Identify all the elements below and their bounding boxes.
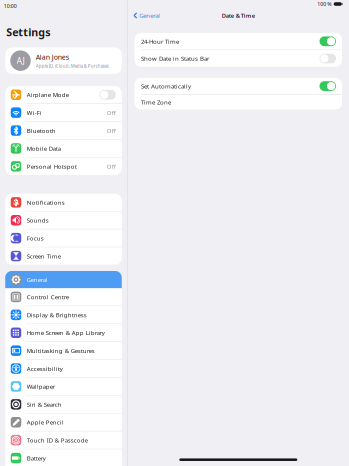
button[interactable]: Touch ID & Passcode	[5, 431, 122, 449]
staticText: Apple Pencil	[27, 418, 64, 426]
button[interactable]: Multitasking & Gestures	[5, 342, 122, 360]
staticText: General	[139, 11, 160, 20]
staticText: Apple ID, iCloud, Media & Purchases	[36, 63, 109, 69]
button[interactable]: Time Zone	[135, 95, 342, 109]
button[interactable]: Set Automatically	[135, 78, 342, 95]
staticText: 100 %	[317, 0, 331, 8]
staticText: Wi-Fi	[27, 109, 42, 117]
button[interactable]: Personal Hotspot	[5, 158, 122, 175]
staticText: Off	[107, 126, 116, 135]
staticText: Touch ID & Passcode	[27, 436, 88, 444]
staticText: Sounds	[27, 216, 49, 224]
staticText: 10:00	[4, 2, 17, 10]
button[interactable]: Airplane Mode	[5, 86, 122, 104]
staticText: General	[27, 276, 48, 284]
staticText: Screen Time	[27, 252, 61, 260]
staticText: AJ	[16, 55, 24, 66]
button[interactable]: Notifications	[5, 194, 122, 212]
staticText: Alan Jones	[36, 52, 69, 62]
staticText: Personal Hotspot	[27, 162, 77, 170]
staticText: Wallpaper	[27, 382, 55, 391]
button[interactable]: Battery	[5, 449, 122, 466]
button[interactable]: Siri & Search	[5, 396, 122, 414]
staticText: Home Screen & App Library	[27, 329, 105, 337]
staticText: Settings	[6, 25, 50, 39]
button[interactable]: Sounds	[5, 212, 122, 229]
staticText: Set Automatically	[141, 82, 191, 90]
button[interactable]: Wallpaper	[5, 378, 122, 396]
button[interactable]: General	[128, 8, 165, 22]
staticText: Focus	[27, 234, 44, 242]
button[interactable]: Screen Time	[5, 247, 122, 265]
staticText: Date & Time	[222, 12, 255, 19]
button[interactable]: Home Screen & App Library	[5, 324, 122, 342]
staticText: Battery	[27, 454, 46, 462]
staticText: Mobile Data	[27, 144, 61, 153]
staticText: Time Zone	[141, 98, 171, 106]
staticText: 24-Hour Time	[141, 37, 179, 45]
button[interactable]: Control Centre	[5, 288, 122, 306]
button[interactable]: Display & Brightness	[5, 306, 122, 324]
staticText: Show Date in Status Bar	[141, 54, 209, 63]
button[interactable]: Accessibility	[5, 360, 122, 378]
button[interactable]: Wi-Fi	[5, 104, 122, 122]
staticText: Control Centre	[27, 293, 69, 301]
staticText: Siri & Search	[27, 400, 62, 408]
staticText: Display & Brightness	[27, 311, 87, 319]
staticText: Off	[107, 162, 116, 170]
staticText: Multitasking & Gestures	[27, 347, 95, 355]
staticText: Notifications	[27, 198, 65, 206]
button[interactable]: Bluetooth	[5, 122, 122, 140]
button[interactable]: General	[5, 271, 122, 288]
button[interactable]: Mobile Data	[5, 140, 122, 158]
staticText: Bluetooth	[27, 126, 56, 135]
button[interactable]: Focus	[5, 229, 122, 247]
staticText: Off	[107, 109, 116, 117]
button[interactable]: Show Date in Status Bar	[135, 50, 342, 67]
button[interactable]: Apple Pencil	[5, 414, 122, 431]
button[interactable]: 24-Hour Time	[135, 33, 342, 50]
button[interactable]: AJ	[5, 47, 122, 74]
staticText: Airplane Mode	[27, 91, 69, 99]
staticText: Accessibility	[27, 364, 63, 373]
